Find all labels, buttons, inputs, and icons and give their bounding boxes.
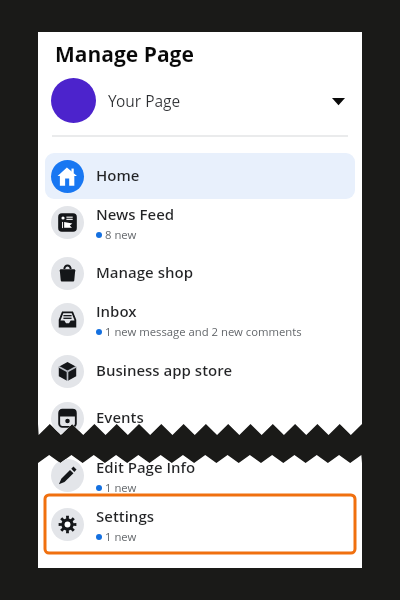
button[interactable]: Edit Page Info bbox=[45, 455, 355, 498]
staticText: Your Page bbox=[108, 90, 181, 111]
staticText: 8 new bbox=[105, 227, 137, 242]
staticText: Home bbox=[96, 165, 140, 185]
button[interactable]: Manage shop bbox=[45, 250, 355, 296]
staticText: Settings bbox=[96, 506, 155, 526]
button[interactable]: Business app store bbox=[45, 348, 355, 394]
staticText: Business app store bbox=[96, 360, 233, 380]
staticText: 1 new bbox=[105, 529, 137, 544]
other: Switch page bbox=[332, 94, 345, 107]
button[interactable]: Your Page bbox=[38, 76, 362, 125]
staticText: 1 new message and 2 new comments bbox=[105, 324, 302, 339]
button[interactable]: News Feed bbox=[45, 199, 355, 245]
button[interactable]: Home bbox=[45, 153, 355, 199]
button[interactable]: Settings bbox=[45, 501, 355, 547]
button[interactable]: Inbox bbox=[45, 296, 355, 342]
staticText: Manage Page bbox=[55, 40, 194, 69]
button[interactable]: Events bbox=[45, 395, 355, 435]
staticText: Inbox bbox=[96, 301, 137, 321]
staticText: Edit Page Info bbox=[96, 457, 196, 477]
staticText: 1 new bbox=[105, 480, 137, 495]
staticText: Manage shop bbox=[96, 262, 193, 282]
staticText: News Feed bbox=[96, 204, 175, 224]
staticText: Events bbox=[96, 407, 144, 427]
